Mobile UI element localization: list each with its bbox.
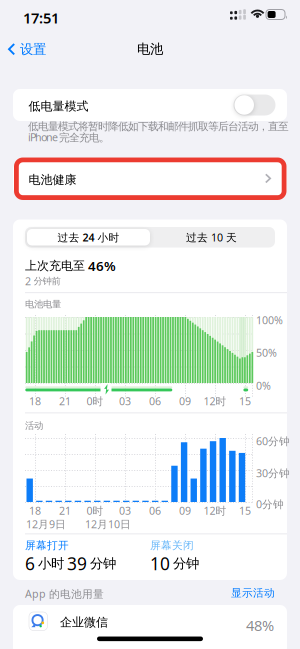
staticText: 设置 bbox=[20, 41, 46, 57]
staticText: 18 bbox=[29, 503, 41, 518]
staticText: 6 bbox=[25, 552, 35, 575]
staticText: 0% bbox=[256, 378, 271, 393]
staticText: 上次充电至 bbox=[25, 258, 85, 273]
button[interactable]: 过去 24 小时 bbox=[27, 229, 150, 245]
button[interactable]: 显示活动 bbox=[25, 586, 275, 600]
staticText: 电池电量 bbox=[25, 298, 61, 310]
staticText: 12时 bbox=[203, 503, 226, 518]
staticText: 21 bbox=[59, 394, 71, 408]
staticText: 分钟前 bbox=[33, 275, 60, 287]
staticText: 03 bbox=[119, 503, 131, 518]
staticText: App 的电池用量 bbox=[25, 586, 104, 601]
button[interactable]: 返回 设置 bbox=[8, 41, 46, 57]
staticText: iPhone 完全充电。 bbox=[28, 130, 110, 144]
staticText: 12时 bbox=[203, 394, 226, 408]
button[interactable]: 低电量模式 bbox=[233, 94, 275, 115]
staticText: 企业微信 bbox=[60, 615, 108, 630]
staticText: 分钟 bbox=[90, 555, 116, 572]
staticText: 过去 10 天 bbox=[186, 230, 237, 244]
staticText: 15 bbox=[239, 394, 251, 408]
staticText: 过去 24 小时 bbox=[57, 230, 119, 244]
staticText: 06 bbox=[149, 503, 161, 518]
staticText: 显示活动 bbox=[231, 586, 275, 600]
staticText: 2 bbox=[25, 274, 31, 288]
staticText: 46% bbox=[88, 257, 116, 275]
staticText: 12月9日 bbox=[26, 517, 66, 531]
staticText: 48% bbox=[246, 615, 274, 635]
button[interactable]: 企业微信 bbox=[13, 605, 287, 649]
staticText: 17:51 bbox=[23, 8, 59, 27]
staticText: 电池 bbox=[137, 41, 163, 57]
staticText: 12月10日 bbox=[85, 517, 131, 531]
staticText: 39 bbox=[67, 552, 87, 575]
button[interactable]: 过去 10 天 bbox=[150, 229, 273, 245]
staticText: 30分钟 bbox=[256, 466, 290, 480]
staticText: 低电量模式将暂时降低如下载和邮件抓取等后台活动，直至 bbox=[28, 120, 289, 133]
staticText: 09 bbox=[179, 503, 191, 518]
staticText: 03 bbox=[119, 394, 131, 408]
staticText: 09 bbox=[179, 394, 191, 408]
staticText: 21 bbox=[59, 503, 71, 518]
staticText: 分钟 bbox=[173, 555, 199, 572]
staticText: 屏幕打开 bbox=[25, 539, 69, 552]
staticText: 活动 bbox=[25, 420, 43, 431]
staticText: 0时 bbox=[86, 503, 103, 518]
button[interactable]: 电池健康 bbox=[13, 162, 287, 195]
staticText: 15 bbox=[239, 503, 251, 518]
staticText: 18 bbox=[29, 394, 41, 408]
staticText: 60分钟 bbox=[256, 434, 290, 448]
staticText: 屏幕关闭 bbox=[150, 539, 194, 552]
staticText: 0时 bbox=[86, 394, 103, 408]
staticText: 0分钟 bbox=[256, 497, 284, 511]
staticText: 低电量模式 bbox=[28, 99, 88, 114]
staticText: 100% bbox=[256, 313, 283, 327]
staticText: 06 bbox=[149, 394, 161, 408]
staticText: 电池健康 bbox=[28, 172, 76, 187]
staticText: 小时 bbox=[38, 555, 64, 572]
staticText: 10 bbox=[150, 552, 170, 575]
staticText: 50% bbox=[256, 345, 277, 360]
